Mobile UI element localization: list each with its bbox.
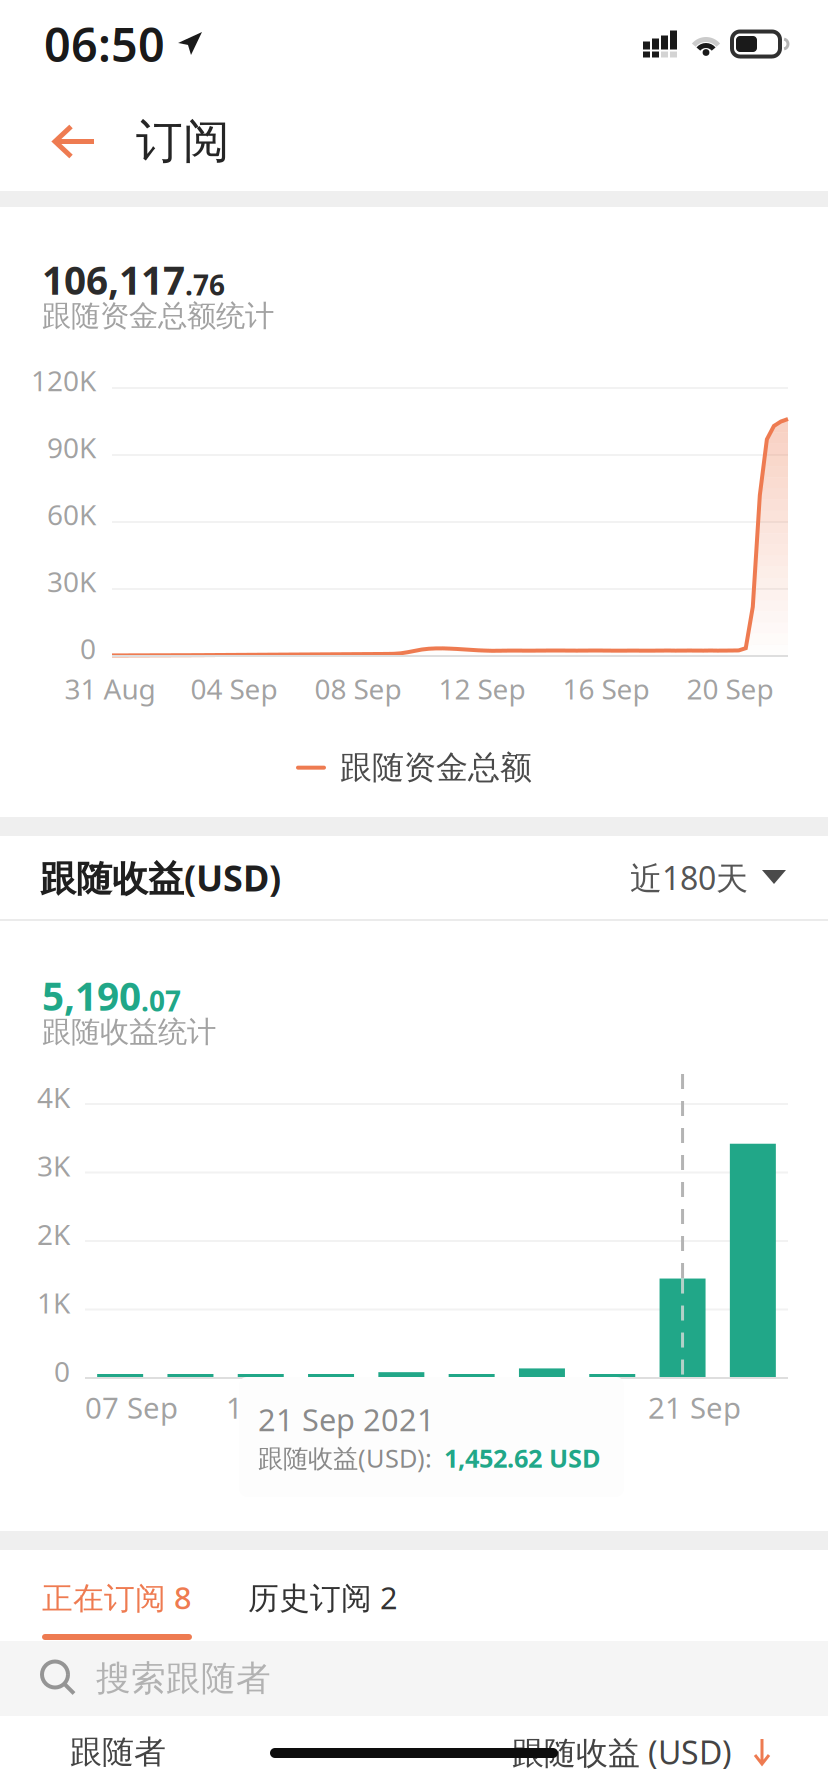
button[interactable]: 历史订阅 2 xyxy=(192,1550,398,1641)
staticText: 21 Sep 2021 xyxy=(258,1399,435,1440)
staticText: 近180天 xyxy=(630,856,748,899)
button[interactable]: 正在订阅 8 xyxy=(42,1550,192,1641)
staticText: 跟随者 xyxy=(70,1732,166,1772)
staticText: 04 Sep xyxy=(190,670,277,707)
staticText: 2K xyxy=(37,1216,70,1253)
staticText: 跟随资金总额统计 xyxy=(42,298,274,334)
staticText: 30K xyxy=(47,563,96,600)
staticText: 搜索跟随者 xyxy=(96,1657,271,1700)
staticText: 07 Sep xyxy=(85,1388,178,1427)
staticText: 90K xyxy=(47,429,96,466)
staticText: 106,117 xyxy=(42,254,185,305)
staticText: 06:50 xyxy=(44,13,165,75)
staticText: .07 xyxy=(141,982,181,1019)
staticText: 1,452.62 USD xyxy=(444,1441,601,1475)
staticText: 历史订阅 2 xyxy=(248,1577,398,1618)
staticText: 跟随资金总额 xyxy=(340,748,532,787)
staticText: 订阅 xyxy=(136,113,230,170)
staticText: 120K xyxy=(31,362,96,399)
staticText: 0 xyxy=(54,1353,70,1390)
staticText: 12 Sep xyxy=(438,670,525,707)
staticText: 跟随收益 (USD) xyxy=(512,1731,732,1773)
staticText: 正在订阅 8 xyxy=(42,1577,192,1618)
staticText: 1K xyxy=(37,1284,70,1321)
staticText: 跟随收益(USD): xyxy=(258,1441,432,1475)
staticText: 21 Sep xyxy=(648,1388,741,1427)
staticText: 16 Sep xyxy=(562,670,649,707)
button[interactable]: Back xyxy=(40,92,108,190)
staticText: 1 xyxy=(226,1388,243,1427)
staticText: .76 xyxy=(185,266,225,303)
staticText: 60K xyxy=(47,496,96,533)
staticText: 跟随收益(USD) xyxy=(40,854,281,901)
staticText: 5,190 xyxy=(42,970,141,1021)
staticText: 跟随收益统计 xyxy=(42,1014,216,1050)
button[interactable]: 近180天 xyxy=(630,856,786,899)
staticText: 3K xyxy=(37,1147,70,1184)
staticText: 31 Aug xyxy=(64,670,155,707)
staticText: 4K xyxy=(37,1079,70,1116)
staticText: 0 xyxy=(80,630,96,667)
staticText: 08 Sep xyxy=(314,670,401,707)
staticText: 20 Sep xyxy=(686,670,773,707)
